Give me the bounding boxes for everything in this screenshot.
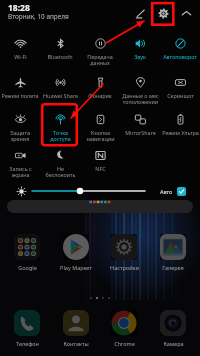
staticText: Режим полета	[1, 92, 39, 99]
staticText: Настройки	[110, 264, 139, 271]
staticText: Автоповорот	[163, 53, 197, 60]
button[interactable]: Режим Ультра	[160, 109, 200, 145]
button[interactable]: Галерея	[151, 234, 195, 271]
staticText: 18:28	[8, 2, 30, 14]
staticText: Данные о мес тоположении	[122, 92, 159, 106]
button[interactable]: Bluetooth	[40, 33, 80, 69]
staticText: Play Маркет	[60, 264, 92, 271]
staticText: NFC	[95, 165, 106, 172]
button[interactable]: NFC	[80, 145, 120, 181]
staticText: Камера	[163, 340, 184, 347]
staticText: Звук	[134, 53, 146, 60]
button[interactable]: Huawei Share	[40, 72, 80, 108]
staticText: Точка доступа	[50, 129, 71, 143]
button[interactable]: Режим полета	[0, 72, 40, 108]
button[interactable]: Edit	[130, 3, 150, 23]
staticText: Google	[18, 264, 37, 271]
button[interactable]: Google	[5, 234, 49, 271]
button[interactable]: Передача данных	[80, 33, 120, 69]
button[interactable]: Collapse panel	[176, 3, 196, 23]
button[interactable]: Auto brightness	[177, 187, 186, 196]
staticText: Телефон	[16, 340, 39, 347]
staticText: Режим Ультра	[162, 129, 199, 136]
button[interactable]: Settings	[153, 3, 173, 23]
button[interactable]: Запись с экрана	[0, 145, 40, 181]
button[interactable]: Защита зрения	[0, 109, 40, 145]
staticText: Chrome	[114, 340, 135, 347]
button[interactable]: Точка доступа	[40, 109, 80, 145]
staticText: MirrorShare	[125, 129, 156, 136]
staticText: Не беспокоить	[45, 165, 76, 179]
staticText: Huawei Share	[43, 92, 78, 99]
staticText: Авто	[160, 188, 173, 195]
button[interactable]: Chrome	[102, 310, 146, 347]
staticText: Кнопка навигации	[86, 129, 115, 143]
button[interactable]: Телефон	[5, 310, 49, 347]
staticText: Контакты	[63, 340, 89, 347]
button[interactable]: Настройки	[102, 234, 146, 271]
staticText: Вторник, 10 апреля	[8, 12, 69, 21]
button[interactable]: Скриншот	[160, 72, 200, 108]
staticText: Фонарик	[88, 92, 112, 99]
button[interactable]: Play Маркет	[54, 234, 98, 271]
staticText: Запись с экрана	[9, 165, 32, 179]
staticText: Защита зрения	[10, 129, 30, 143]
button[interactable]: Кнопка навигации	[80, 109, 120, 145]
button[interactable]: Звук	[120, 33, 160, 69]
button[interactable]: Фонарик	[80, 72, 120, 108]
button[interactable]: Wi-Fi	[0, 33, 40, 69]
staticText: Wi-Fi	[14, 53, 27, 60]
button[interactable]: Не беспокоить	[40, 145, 80, 181]
button[interactable]: Камера	[151, 310, 195, 347]
button[interactable]: MirrorShare	[120, 109, 160, 145]
button[interactable]: Данные о мес тоположении	[120, 72, 160, 108]
staticText: Bluetooth	[47, 53, 73, 60]
staticText: Передача данных	[87, 53, 113, 67]
staticText: Галерея	[162, 264, 184, 271]
staticText: Скриншот	[167, 92, 194, 99]
button[interactable]	[7, 200, 193, 213]
button[interactable]: Автоповорот	[160, 33, 200, 69]
button[interactable]: Контакты	[54, 310, 98, 347]
